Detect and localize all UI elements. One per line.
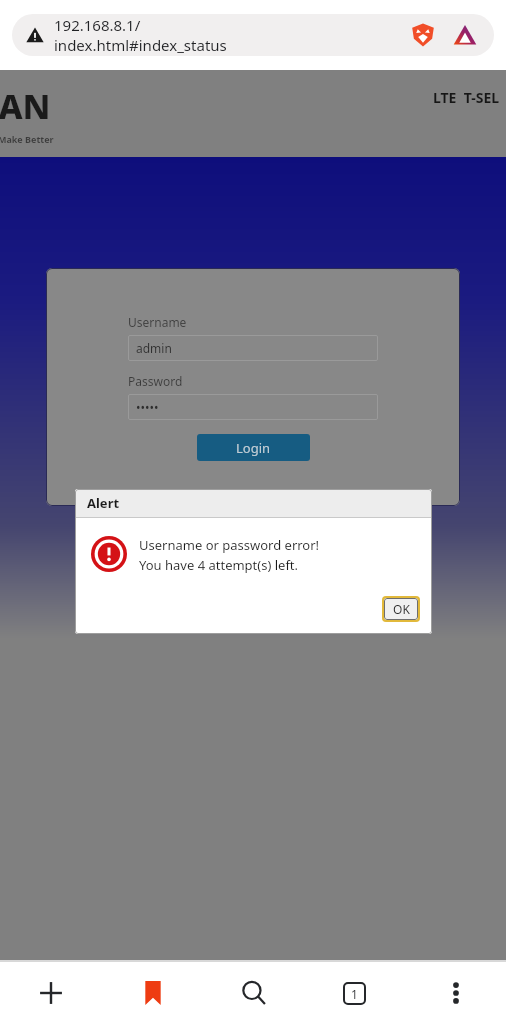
button[interactable]: admin bbox=[128, 335, 378, 361]
staticText: You have 4 attempt(s) left. bbox=[139, 556, 299, 574]
staticText: admin bbox=[136, 340, 172, 356]
staticText: Username or password error! bbox=[139, 536, 320, 554]
button[interactable]: OK bbox=[382, 596, 420, 622]
staticText: ••••• bbox=[136, 399, 159, 415]
staticText: LTE T-SEL bbox=[433, 88, 500, 107]
staticText: Login bbox=[236, 439, 271, 457]
staticText: MAN bbox=[0, 83, 51, 129]
button[interactable]: Tabs, 1 open bbox=[304, 962, 405, 1024]
button[interactable]: ••••• bbox=[128, 394, 378, 420]
staticText: Username bbox=[128, 314, 187, 330]
staticText: 192.168.8.1/index.html#index_status bbox=[54, 15, 231, 55]
staticText: OK bbox=[393, 601, 410, 617]
button[interactable]: Bookmarks bbox=[102, 962, 203, 1024]
staticText: Great. Make Better bbox=[0, 133, 54, 145]
button[interactable]: Brave Shields bbox=[408, 20, 438, 50]
staticText: 1 bbox=[351, 986, 358, 1002]
button[interactable]: Brave Rewards bbox=[450, 20, 480, 50]
button[interactable]: New tab bbox=[0, 962, 102, 1024]
staticText: Password bbox=[128, 373, 183, 389]
button[interactable]: 192.168.8.1/index.html#index_status bbox=[12, 14, 494, 56]
button[interactable]: More options bbox=[405, 962, 506, 1024]
button[interactable]: Search bbox=[203, 962, 304, 1024]
staticText: Alert bbox=[87, 494, 120, 512]
button[interactable]: Login bbox=[197, 434, 310, 461]
